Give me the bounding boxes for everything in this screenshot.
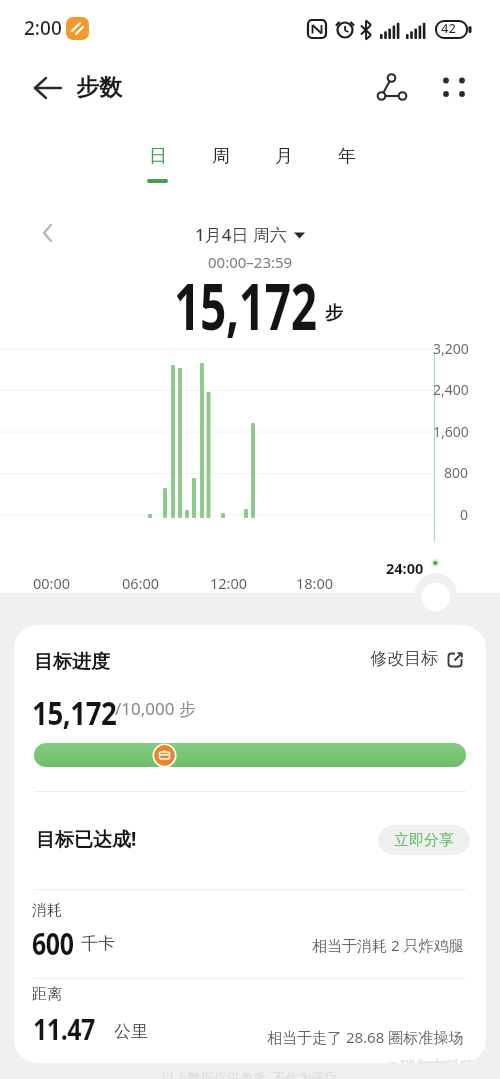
staticText: 12:00 xyxy=(210,573,248,593)
staticText: 600 xyxy=(32,923,73,964)
staticText: 步 xyxy=(325,302,343,325)
staticText: 15,172 xyxy=(32,691,117,735)
button[interactable]: 修改目标 xyxy=(370,648,463,669)
staticText: /10,000 步 xyxy=(115,697,196,720)
staticText: 24:00 xyxy=(386,558,424,578)
staticText: 3,200 xyxy=(433,339,469,358)
staticText: 00:00 xyxy=(33,573,71,593)
button[interactable]: 消耗 xyxy=(14,889,486,978)
staticText: 11.47 xyxy=(33,1009,96,1048)
button[interactable]: 月 xyxy=(252,145,315,179)
button[interactable] xyxy=(372,68,412,108)
staticText: 距离 xyxy=(32,985,62,1004)
staticText: 06:00 xyxy=(122,573,160,593)
staticText: 以上数据仅供参考, 不作为医疗 xyxy=(162,1068,338,1079)
staticText: 相当于走了 28.68 圈标准操场 xyxy=(267,1027,464,1047)
staticText: 18:00 xyxy=(296,573,334,593)
button[interactable] xyxy=(436,68,476,108)
staticText: 15,172 xyxy=(174,262,317,349)
button[interactable]: 距离 xyxy=(14,979,486,1063)
staticText: 千卡 xyxy=(81,933,115,954)
staticText: 目标已达成! xyxy=(36,826,137,852)
button[interactable]: 周 xyxy=(189,145,252,179)
staticText: 2,400 xyxy=(433,380,469,399)
staticText: 800 xyxy=(444,463,469,482)
staticText: 1,600 xyxy=(433,422,469,441)
staticText: 2:00 xyxy=(24,15,62,41)
staticText: 0 xyxy=(460,505,469,524)
staticText: 42 xyxy=(441,19,456,37)
staticText: 公里 xyxy=(114,1021,148,1042)
button[interactable]: 立即分享 xyxy=(378,825,470,855)
button[interactable]: 日 xyxy=(126,145,189,179)
staticText: 消耗 xyxy=(32,901,62,920)
staticText: 日 xyxy=(149,145,167,168)
staticText: 相当于消耗 2 只炸鸡腿 xyxy=(312,935,464,955)
staticText: 年 xyxy=(338,145,356,168)
staticText: @瑞尔吉科穆邦 xyxy=(386,1056,486,1063)
staticText: 修改目标 xyxy=(370,648,438,669)
staticText: 目标进度 xyxy=(34,650,110,674)
staticText: 00:00–23:59 xyxy=(208,252,293,272)
staticText: 1月4日 周六 xyxy=(195,223,287,246)
staticText: 步数 xyxy=(76,73,122,102)
staticText: 立即分享 xyxy=(394,831,454,850)
button[interactable] xyxy=(28,74,64,110)
button[interactable]: 年 xyxy=(315,145,378,179)
staticText: 月 xyxy=(275,145,293,168)
button[interactable]: 1月4日 周六 xyxy=(100,221,400,247)
staticText: 周 xyxy=(212,145,230,168)
